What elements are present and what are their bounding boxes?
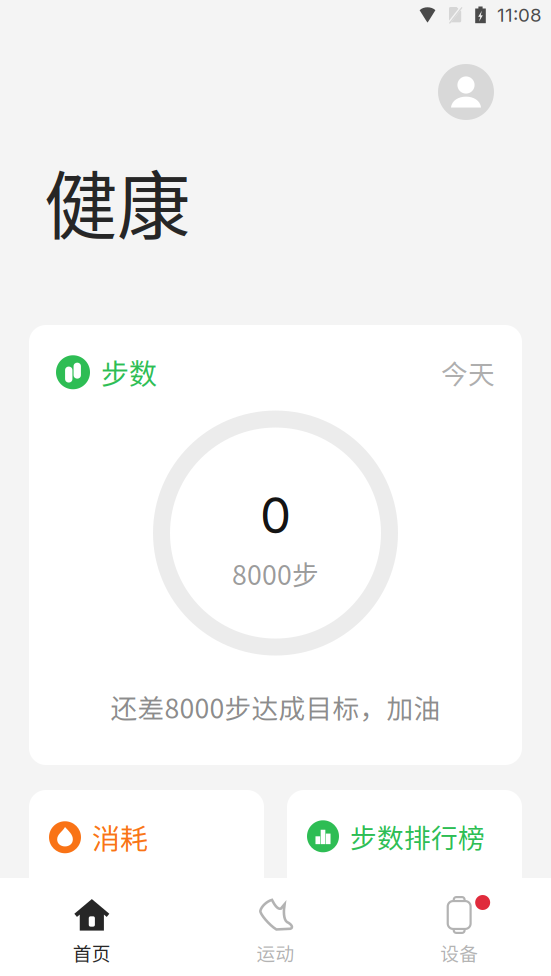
button[interactable]: 设备	[367, 878, 551, 966]
staticText: 0	[260, 485, 291, 545]
staticText: 还差8000步达成目标，加油	[110, 687, 440, 726]
staticText: 步数	[101, 352, 157, 392]
staticText: 步数排行榜	[350, 817, 485, 856]
button[interactable]: 消耗	[29, 790, 264, 910]
staticText: 8000步	[232, 554, 319, 593]
button[interactable]: Profile	[438, 64, 494, 120]
button[interactable]: 运动	[184, 878, 367, 966]
button[interactable]: 首页	[0, 878, 184, 966]
staticText: 消耗	[92, 817, 148, 857]
staticText: 今天	[441, 353, 495, 392]
staticText: 运动	[256, 939, 294, 966]
staticText: 设备	[440, 939, 478, 966]
staticText: 健康	[44, 148, 190, 254]
staticText: 11:08	[497, 4, 542, 26]
button[interactable]: 步数排行榜	[287, 790, 522, 910]
staticText: 首页	[73, 939, 111, 966]
